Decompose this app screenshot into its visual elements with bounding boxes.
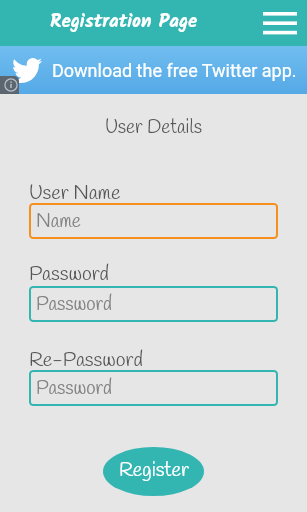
button[interactable]: Password xyxy=(29,370,278,406)
staticText: Register xyxy=(119,457,189,484)
staticText: Registration Page xyxy=(50,7,198,37)
staticText: Password xyxy=(36,292,113,317)
staticText: Password xyxy=(29,261,110,288)
staticText: Download the free Twitter app. xyxy=(52,60,297,81)
staticText: User Details xyxy=(0,115,307,140)
staticText: User Name xyxy=(29,180,121,207)
staticText: Password xyxy=(36,376,113,401)
button[interactable]: Name xyxy=(29,203,278,239)
staticText: Re-Password xyxy=(29,347,143,374)
button[interactable]: Ad info xyxy=(0,76,19,94)
button[interactable]: Register xyxy=(103,447,204,496)
button[interactable]: Menu xyxy=(260,3,300,43)
staticText: Name xyxy=(36,209,81,234)
button[interactable]: Download the free Twitter app. xyxy=(0,46,307,94)
button[interactable]: Password xyxy=(29,286,278,322)
